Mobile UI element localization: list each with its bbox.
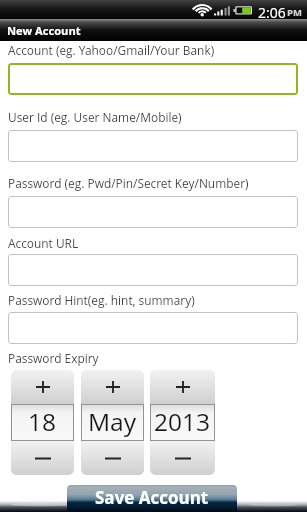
- button[interactable]: [8, 130, 298, 162]
- button[interactable]: [8, 312, 298, 344]
- staticText: Account URL: [8, 235, 79, 251]
- staticText: 2013: [154, 405, 211, 438]
- staticText: Save Account: [95, 486, 209, 509]
- button[interactable]: Increase: [11, 370, 74, 404]
- staticText: May: [88, 405, 137, 438]
- button[interactable]: 2013: [150, 404, 215, 441]
- staticText: Password (eg. Pwd/Pin/Secret Key/Number): [8, 175, 249, 191]
- button[interactable]: [8, 254, 298, 286]
- button[interactable]: Decrease: [150, 441, 215, 475]
- button[interactable]: [8, 196, 298, 228]
- other: Status bar: [0, 0, 307, 19]
- button[interactable]: Increase: [81, 370, 144, 404]
- button[interactable]: Save Account: [67, 485, 237, 512]
- staticText: 18: [28, 405, 57, 438]
- button[interactable]: Decrease: [11, 441, 74, 475]
- staticText: User Id (eg. User Name/Mobile): [8, 109, 182, 125]
- button[interactable]: May: [81, 404, 144, 441]
- staticText: Account (eg. Yahoo/Gmail/Your Bank): [8, 42, 215, 58]
- staticText: Password Expiry: [8, 350, 99, 366]
- staticText: New Account: [7, 23, 81, 38]
- staticText: Password Hint(eg. hint, summary): [8, 292, 195, 308]
- staticText: 2:06: [258, 3, 286, 22]
- staticText: PM: [287, 6, 302, 19]
- button[interactable]: 18: [11, 404, 74, 441]
- button[interactable]: Increase: [150, 370, 215, 404]
- button[interactable]: Decrease: [81, 441, 144, 475]
- button[interactable]: [8, 63, 298, 95]
